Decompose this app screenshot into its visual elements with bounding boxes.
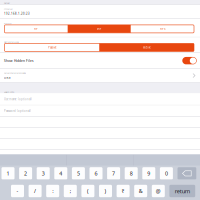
button[interactable]: Show Hidden Files: [0, 53, 200, 68]
staticText: ₹: [122, 187, 125, 195]
staticText: ;: [70, 187, 71, 195]
staticText: @: [156, 187, 161, 195]
button[interactable]: ): [99, 185, 112, 197]
staticText: 5: [77, 170, 80, 177]
staticText: Passive: [48, 46, 56, 49]
staticText: &: [139, 187, 143, 195]
staticText: return: [175, 187, 190, 195]
staticText: Server Character Encoding: [4, 72, 26, 74]
staticText: 192.168.1.20:23: [4, 12, 30, 15]
staticText: 7: [112, 170, 115, 177]
button[interactable]: (: [81, 185, 94, 197]
button[interactable]: 0: [160, 167, 173, 180]
button[interactable]: 1: [1, 167, 14, 180]
staticText: 4: [59, 170, 62, 177]
staticText: FTPS: [160, 27, 165, 31]
button[interactable]: 5: [72, 167, 85, 180]
button[interactable]: Active: [99, 43, 194, 51]
button[interactable]: FTPS: [131, 25, 194, 33]
staticText: Show Hidden Files: [4, 58, 34, 63]
button[interactable]: return: [169, 185, 195, 197]
button[interactable]: @: [152, 185, 165, 197]
button[interactable]: ;: [64, 185, 77, 197]
staticText: FTP Server: [4, 8, 13, 10]
button[interactable]: Password (optional): [0, 105, 200, 116]
button[interactable]: ₹: [117, 185, 130, 197]
staticText: 2: [24, 170, 27, 177]
staticText: 8: [130, 170, 133, 177]
button[interactable]: Server Character Encoding: [0, 69, 200, 82]
staticText: Protocol: [4, 22, 11, 25]
staticText: 1: [6, 170, 9, 177]
button[interactable]: -: [11, 185, 24, 197]
staticText: 3: [42, 170, 45, 177]
button[interactable]: &: [134, 185, 147, 197]
staticText: UTF-8: [4, 76, 11, 79]
button[interactable]: 7: [107, 167, 120, 180]
staticText: -: [16, 187, 18, 195]
staticText: FTP: [34, 27, 38, 31]
staticText: Login Info: [4, 91, 14, 93]
button[interactable]: 2: [19, 167, 32, 180]
button[interactable]: Username (optional): [0, 93, 200, 105]
button[interactable]: 4: [54, 167, 67, 180]
staticText: (: [87, 187, 89, 195]
button[interactable]: 8: [125, 167, 138, 180]
button[interactable]: SFTP: [68, 25, 131, 33]
staticText: /: [34, 187, 36, 195]
staticText: ): [104, 187, 106, 195]
staticText: Password (optional): [4, 109, 31, 113]
button[interactable]: /: [29, 185, 42, 197]
staticText: :: [52, 187, 53, 195]
button[interactable]: FTP: [4, 25, 68, 33]
button[interactable]: 3: [37, 167, 50, 180]
staticText: Username (optional): [4, 97, 32, 101]
staticText: SFTP: [97, 27, 102, 31]
staticText: 9: [147, 170, 150, 177]
staticText: Server: [4, 2, 10, 4]
staticText: 6: [94, 170, 97, 177]
button[interactable]: 6: [89, 167, 102, 180]
button[interactable]: 9: [142, 167, 155, 180]
staticText: 0: [165, 170, 168, 177]
button[interactable]: Delete: [177, 167, 196, 180]
button[interactable]: :: [46, 185, 59, 197]
staticText: File Transfer Mode: [4, 41, 19, 43]
staticText: Active: [143, 46, 150, 49]
button[interactable]: Passive: [4, 43, 99, 51]
